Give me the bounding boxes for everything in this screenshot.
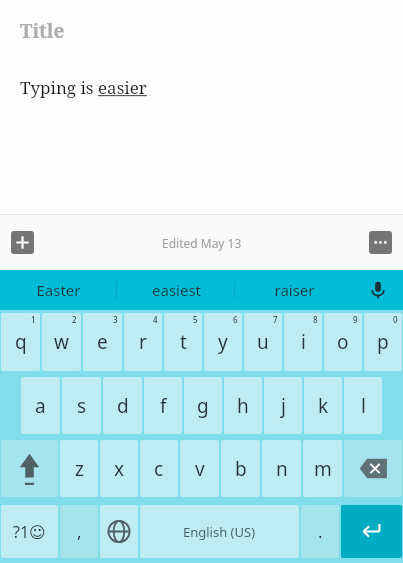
button[interactable]: . (301, 505, 339, 558)
button[interactable]: w (42, 313, 81, 371)
button[interactable]: Backspace (344, 440, 402, 497)
staticText: easiest (152, 280, 201, 300)
button[interactable]: a (21, 377, 60, 434)
staticText: d (117, 393, 129, 419)
staticText: 8 (313, 314, 318, 325)
staticText: 4 (153, 314, 158, 325)
button[interactable]: u (244, 313, 282, 371)
button[interactable]: b (221, 440, 260, 497)
button[interactable]: Easter (0, 270, 117, 310)
staticText: g (197, 393, 209, 419)
button[interactable]: Add (11, 231, 34, 254)
staticText: j (281, 393, 286, 419)
button[interactable]: s (62, 377, 101, 434)
button[interactable]: d (103, 377, 142, 434)
button[interactable]: m (303, 440, 342, 497)
staticText: c (154, 456, 164, 482)
button[interactable]: p (364, 313, 402, 371)
staticText: Easter (36, 280, 81, 300)
staticText: a (35, 393, 46, 419)
staticText: o (337, 329, 349, 355)
button[interactable]: o (324, 313, 362, 371)
staticText: u (257, 329, 269, 355)
button[interactable]: x (100, 440, 138, 497)
staticText: English (US) (183, 523, 256, 541)
staticText: m (314, 456, 332, 482)
staticText: s (77, 393, 87, 419)
button[interactable]: Voice input (353, 270, 403, 310)
staticText: , (77, 520, 82, 543)
staticText: 1 (31, 314, 36, 325)
staticText: 2 (72, 314, 77, 325)
button[interactable]: More options (369, 231, 392, 254)
staticText: h (237, 393, 249, 419)
button[interactable]: Enter (341, 505, 402, 558)
button[interactable]: Shift (1, 440, 58, 497)
staticText: t (180, 329, 187, 355)
button[interactable]: r (124, 313, 162, 371)
button[interactable]: e (83, 313, 122, 371)
button[interactable]: l (344, 377, 382, 434)
staticText: 9 (353, 314, 358, 325)
button[interactable]: i (284, 313, 322, 371)
button[interactable]: , (60, 505, 98, 558)
staticText: i (301, 329, 306, 355)
staticText: r (139, 329, 147, 355)
staticText: easier (98, 76, 147, 99)
button[interactable]: j (264, 377, 302, 434)
staticText: l (361, 393, 366, 419)
staticText: 3 (113, 314, 118, 325)
staticText: k (318, 393, 329, 419)
button[interactable]: g (184, 377, 222, 434)
staticText: w (54, 329, 69, 355)
button[interactable]: v (180, 440, 219, 497)
staticText: raiser (274, 280, 315, 300)
staticText: n (276, 456, 288, 482)
button[interactable]: y (204, 313, 242, 371)
button[interactable]: Change language (100, 505, 138, 558)
button[interactable]: z (60, 440, 98, 497)
button[interactable]: f (144, 377, 182, 434)
button[interactable]: h (224, 377, 262, 434)
staticText: Typing is (20, 76, 98, 99)
button[interactable]: ?1☺ (1, 505, 58, 558)
staticText: f (160, 393, 167, 419)
staticText: 6 (233, 314, 238, 325)
staticText: ?1☺ (13, 521, 46, 543)
staticText: x (114, 456, 125, 482)
button[interactable]: k (304, 377, 342, 434)
staticText: 5 (193, 314, 198, 325)
staticText: Title (20, 18, 65, 44)
button[interactable]: t (164, 313, 202, 371)
staticText: Edited May 13 (162, 235, 242, 251)
button[interactable]: n (262, 440, 301, 497)
staticText: p (377, 329, 389, 355)
staticText: v (195, 456, 205, 482)
staticText: q (15, 329, 27, 355)
button[interactable]: raiser (235, 270, 353, 310)
button[interactable]: English (US) (140, 505, 299, 558)
staticText: 7 (273, 314, 278, 325)
button[interactable]: c (140, 440, 178, 497)
staticText: 0 (393, 314, 398, 325)
staticText: e (97, 329, 108, 355)
staticText: b (235, 456, 247, 482)
staticText: . (318, 520, 323, 543)
staticText: z (75, 456, 84, 482)
staticText: y (218, 329, 228, 355)
button[interactable]: q (1, 313, 40, 371)
button[interactable]: easiest (117, 270, 235, 310)
